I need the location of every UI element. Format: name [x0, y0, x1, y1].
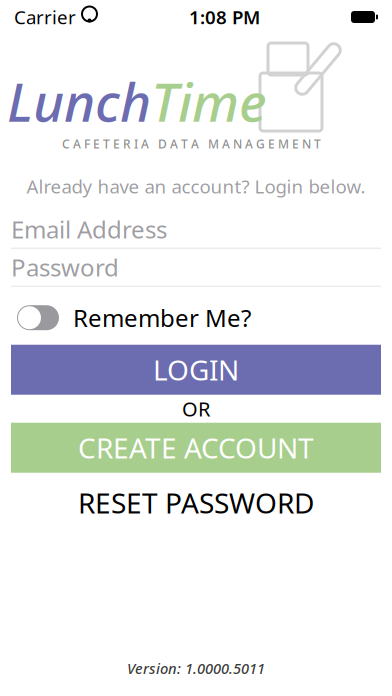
- button[interactable]: LOGIN: [11, 345, 381, 395]
- staticText: C A F E T E R I A D A T A M A N A G E M …: [62, 136, 321, 152]
- staticText: Email Address: [11, 213, 167, 245]
- button[interactable]: RESET PASSWORD: [11, 479, 381, 527]
- staticText: Already have an account? Login below.: [26, 174, 365, 199]
- staticText: OR: [182, 395, 210, 422]
- staticText: Remember Me?: [73, 302, 251, 334]
- staticText: Lunch: [7, 66, 151, 136]
- staticText: Time: [151, 66, 267, 136]
- staticText: Carrier: [14, 5, 76, 29]
- button[interactable]: CREATE ACCOUNT: [11, 423, 381, 473]
- button[interactable]: Remember Me?: [0, 297, 392, 339]
- staticText: LOGIN: [153, 351, 239, 388]
- staticText: 1:08 PM: [189, 5, 260, 29]
- staticText: RESET PASSWORD: [78, 484, 314, 521]
- staticText: CREATE ACCOUNT: [78, 429, 314, 466]
- staticText: Version: 1.0000.5011: [127, 658, 265, 678]
- staticText: Password: [11, 251, 119, 283]
